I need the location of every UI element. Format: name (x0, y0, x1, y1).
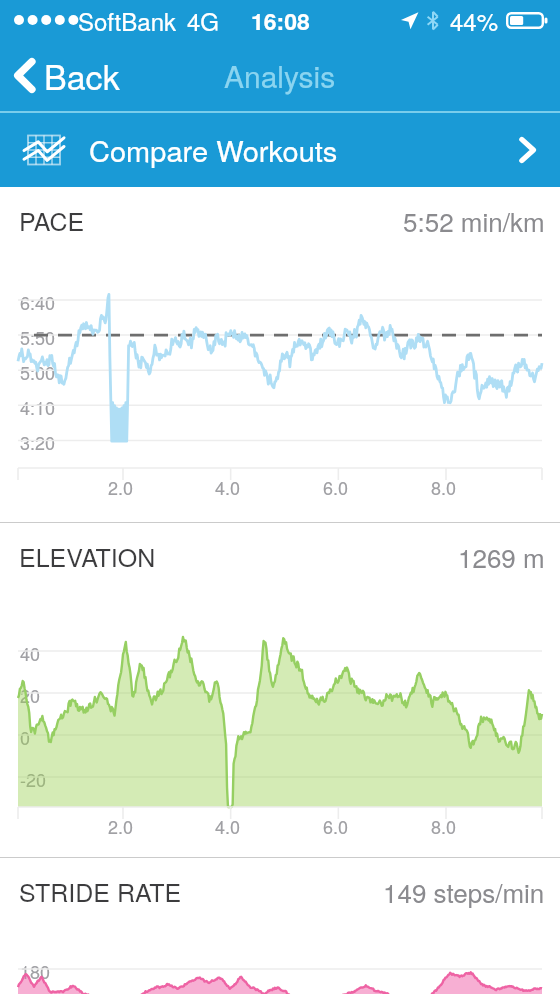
staticText: STRIDE RATE (19, 873, 182, 909)
staticText: 4G (187, 3, 220, 37)
staticText: 4.0 (215, 813, 241, 839)
staticText: 6:40 (20, 289, 56, 315)
staticText: 5:50 (20, 324, 56, 350)
staticText: 6.0 (323, 813, 349, 839)
staticText: 180 (20, 958, 51, 984)
staticText: Back (44, 51, 120, 100)
staticText: 5:52 min/km (403, 202, 545, 239)
staticText: SoftBank (78, 3, 176, 37)
staticText: 20 (20, 682, 41, 708)
staticText: ELEVATION (19, 538, 156, 574)
staticText: Compare Workouts (89, 129, 338, 171)
staticText: 2.0 (108, 813, 134, 839)
button[interactable]: Back (10, 47, 124, 104)
staticText: 4:10 (20, 394, 56, 420)
staticText: 3:20 (20, 429, 56, 455)
staticText: 149 steps/min (383, 873, 545, 910)
staticText: 1269 m (458, 538, 545, 575)
staticText: 44% (450, 3, 499, 37)
staticText: 5:00 (20, 359, 56, 385)
staticText: 16:08 (251, 4, 310, 37)
staticText: 4.0 (215, 474, 241, 500)
staticText: 6.0 (323, 474, 349, 500)
button[interactable]: Compare Workouts (0, 113, 560, 187)
staticText: -20 (20, 766, 47, 792)
staticText: 0 (20, 724, 31, 750)
staticText: 40 (20, 640, 41, 666)
staticText: 8.0 (431, 474, 457, 500)
other: Open compare workouts (520, 138, 535, 162)
staticText: PACE (19, 202, 85, 238)
staticText: 2.0 (108, 474, 134, 500)
staticText: 8.0 (431, 813, 457, 839)
staticText: Analysis (224, 54, 336, 97)
